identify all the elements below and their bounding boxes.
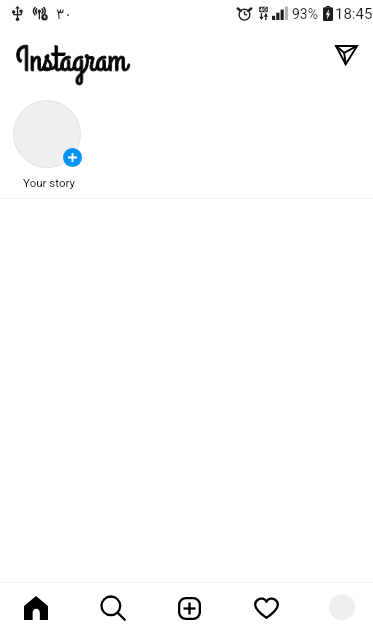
button[interactable]: Activity <box>244 586 288 626</box>
button[interactable]: Your story <box>9 96 85 196</box>
button[interactable]: Profile <box>320 585 364 626</box>
staticText: ٣٠ <box>56 5 73 22</box>
staticText: 93% <box>292 6 318 22</box>
button[interactable]: Search <box>91 586 135 626</box>
staticText: 18:45 <box>335 5 373 23</box>
staticText: Instagram <box>16 37 127 85</box>
button[interactable]: Create <box>167 586 211 626</box>
button[interactable]: Direct messages <box>329 38 363 72</box>
staticText: Instagram <box>16 37 127 85</box>
staticText: Your story <box>11 176 87 189</box>
button[interactable]: Home <box>14 586 58 626</box>
